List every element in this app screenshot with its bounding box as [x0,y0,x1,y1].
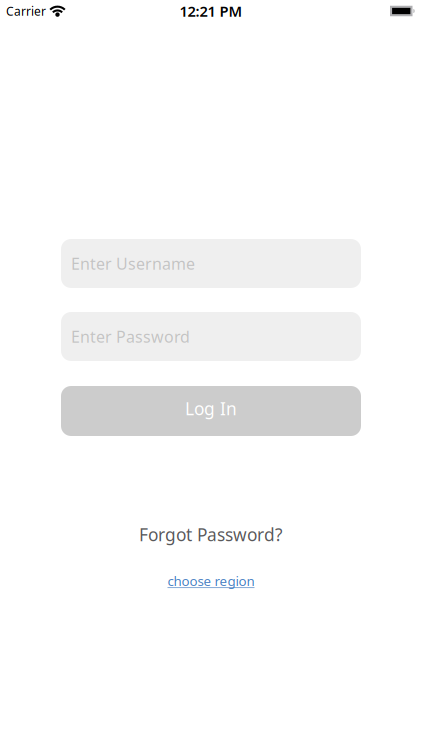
staticText: Log In [185,397,237,420]
staticText: choose region [167,572,254,590]
button[interactable]: Forgot Password? [139,523,283,546]
button[interactable]: Enter Password [61,312,361,361]
button[interactable]: Log In [61,386,361,436]
staticText: Enter Username [71,253,195,274]
button[interactable]: choose region [167,572,254,590]
staticText: Carrier [6,3,46,19]
staticText: 12:21 PM [179,1,242,21]
button[interactable]: Enter Username [61,239,361,288]
staticText: Forgot Password? [139,523,283,546]
staticText: Enter Password [71,326,190,347]
